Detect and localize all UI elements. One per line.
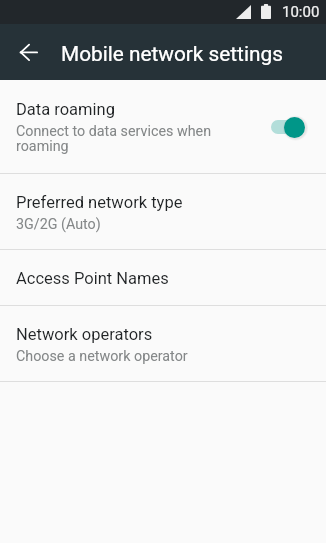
staticText: Choose a network operator: [16, 348, 188, 365]
button[interactable]: Network operators: [0, 306, 326, 381]
button[interactable]: Back: [9, 33, 47, 71]
staticText: Data roaming: [16, 100, 115, 119]
staticText: Network operators: [16, 325, 153, 344]
staticText: Mobile network settings: [61, 42, 283, 66]
button[interactable]: Access Point Names: [0, 250, 326, 305]
button[interactable]: Preferred network type: [0, 174, 326, 249]
staticText: Preferred network type: [16, 193, 183, 212]
staticText: Access Point Names: [16, 269, 169, 288]
staticText: 3G/2G (Auto): [16, 216, 101, 233]
staticText: 10:00: [282, 3, 320, 21]
button[interactable]: Data roaming: [0, 80, 326, 173]
button[interactable]: Data roaming toggle: [271, 114, 305, 140]
staticText: Connect to data services when roaming: [16, 123, 261, 155]
